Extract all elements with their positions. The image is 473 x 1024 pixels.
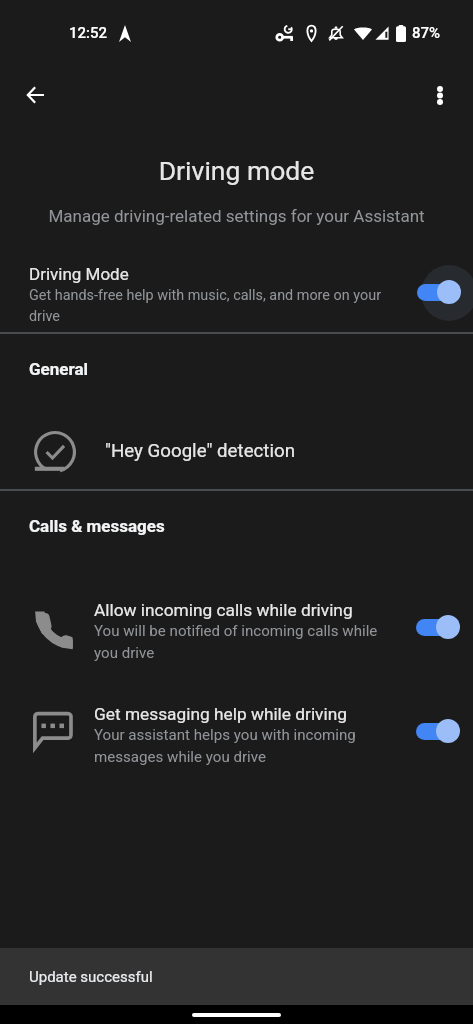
staticText: Your assistant helps you with incoming m… [94,726,382,766]
staticText: Driving Mode [29,264,129,284]
staticText: General [29,359,89,379]
staticText: Update successful [29,968,153,986]
staticText: Get messaging help while driving [94,704,347,724]
button[interactable]: Driving Mode toggle [421,265,473,321]
button[interactable]: Update successful [0,948,473,1005]
staticText: You will be notified of incoming calls w… [94,622,382,662]
button[interactable]: Allow incoming calls while driving [0,595,473,691]
staticText: "Hey Google" detection [105,440,295,462]
staticText: 12:52 [69,24,108,42]
staticText: Manage driving-related settings for your… [0,206,473,226]
staticText: Get hands-free help with music, calls, a… [29,287,385,324]
button[interactable]: Allow incoming calls while driving [410,599,466,655]
button[interactable]: More options [417,72,463,118]
staticText: Calls & messages [29,516,165,536]
button[interactable]: "Hey Google" detection [0,413,473,489]
staticText: Driving mode [0,155,473,186]
staticText: Allow incoming calls while driving [94,600,353,620]
button[interactable]: Back [10,72,56,118]
button[interactable]: Driving Mode [0,248,473,331]
staticText: 87% [412,24,441,42]
button[interactable]: Get messaging help while driving [410,703,466,759]
button[interactable]: Get messaging help while driving [0,699,473,795]
